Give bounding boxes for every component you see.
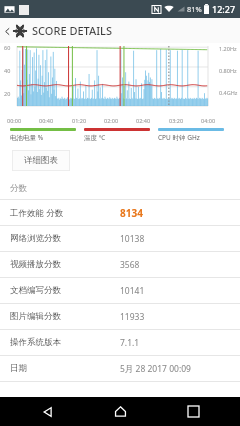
staticText: 分数 bbox=[10, 183, 27, 194]
button[interactable]: 视频播放分数 bbox=[0, 252, 240, 277]
staticText: 0.80Hz bbox=[219, 67, 237, 74]
staticText: CPU 时钟 GHz bbox=[158, 133, 200, 142]
button[interactable]: 详细图表 bbox=[12, 150, 70, 171]
staticText: 02:40 bbox=[136, 117, 151, 124]
staticText: 20 bbox=[4, 90, 11, 97]
button[interactable]: 工作效能 分数 bbox=[0, 200, 240, 225]
button[interactable]: 图片编辑分数 bbox=[0, 304, 240, 329]
staticText: 文档编写分数 bbox=[10, 285, 61, 296]
button[interactable]: 操作系统版本 bbox=[0, 330, 240, 355]
button[interactable]: Back bbox=[23, 397, 73, 426]
staticText: 04:00 bbox=[201, 117, 216, 124]
staticText: 操作系统版本 bbox=[10, 337, 61, 348]
staticText: 工作效能 分数 bbox=[10, 207, 64, 219]
staticText: 0.4GHz bbox=[219, 89, 238, 96]
staticText: SCORE DETAILS bbox=[32, 23, 112, 38]
button[interactable]: Recent apps bbox=[168, 397, 218, 426]
staticText: 1.20Hz bbox=[219, 45, 237, 52]
staticText: 01:20 bbox=[72, 117, 87, 124]
staticText: 00:00 bbox=[7, 117, 22, 124]
staticText: 网络浏览分数 bbox=[10, 233, 61, 244]
button[interactable]: 日期 bbox=[0, 356, 240, 381]
button[interactable]: Home bbox=[95, 397, 145, 426]
staticText: 日期 bbox=[10, 363, 27, 374]
button[interactable]: Back bbox=[1, 25, 13, 37]
staticText: 电池电量 % bbox=[10, 133, 44, 142]
staticText: 02:00 bbox=[104, 117, 119, 124]
button[interactable]: 文档编写分数 bbox=[0, 278, 240, 303]
staticText: 图片编辑分数 bbox=[10, 311, 61, 322]
staticText: 00:40 bbox=[39, 117, 54, 124]
staticText: 12:27 bbox=[212, 3, 236, 15]
staticText: 视频播放分数 bbox=[10, 259, 61, 270]
staticText: 3568 bbox=[120, 259, 140, 271]
staticText: 81% bbox=[187, 4, 202, 14]
staticText: 温度 ℃ bbox=[84, 133, 106, 142]
staticText: 10138 bbox=[120, 233, 145, 245]
staticText: 10141 bbox=[120, 285, 145, 297]
staticText: 03:20 bbox=[169, 117, 184, 124]
button[interactable]: 网络浏览分数 bbox=[0, 226, 240, 251]
staticText: 11933 bbox=[120, 311, 145, 323]
staticText: 详细图表 bbox=[24, 155, 58, 166]
staticText: 5月 28 2017 00:09 bbox=[120, 363, 191, 375]
staticText: 60 bbox=[4, 44, 11, 51]
staticText: 7.1.1 bbox=[120, 337, 140, 349]
staticText: 8134 bbox=[120, 206, 143, 220]
staticText: 40 bbox=[4, 67, 11, 74]
